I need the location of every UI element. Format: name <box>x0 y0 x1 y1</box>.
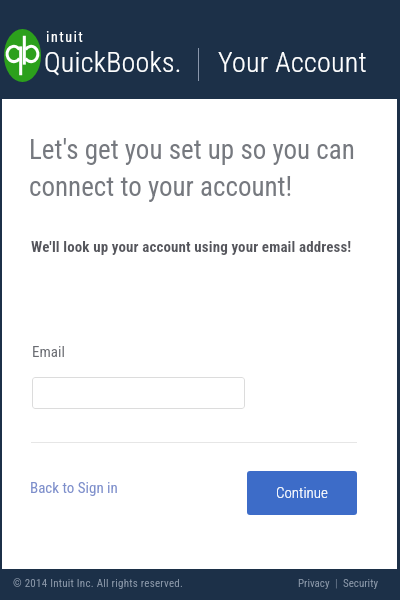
staticText: | <box>330 577 343 590</box>
other: Intuit QuickBooks logo <box>4 29 41 82</box>
button[interactable]: Privacy <box>298 577 330 590</box>
staticText: We'll look up your account using your em… <box>31 238 352 256</box>
staticText: intuit <box>46 29 85 45</box>
staticText: Email <box>32 343 65 361</box>
button[interactable]: Continue <box>247 471 357 515</box>
staticText: Continue <box>276 484 328 502</box>
staticText: Security <box>343 577 378 590</box>
button[interactable]: Email input field <box>32 377 245 409</box>
staticText: QuickBooks. <box>44 46 182 79</box>
button[interactable]: Security <box>343 577 378 590</box>
button[interactable]: Back to Sign in <box>30 477 118 499</box>
staticText: Your Account <box>218 46 367 79</box>
staticText: Privacy <box>298 577 330 590</box>
staticText: Let's get you set up so you can connect … <box>29 134 355 203</box>
staticText: Back to Sign in <box>30 479 118 497</box>
staticText: © 2014 Intuit Inc. All rights reserved. <box>13 577 184 590</box>
